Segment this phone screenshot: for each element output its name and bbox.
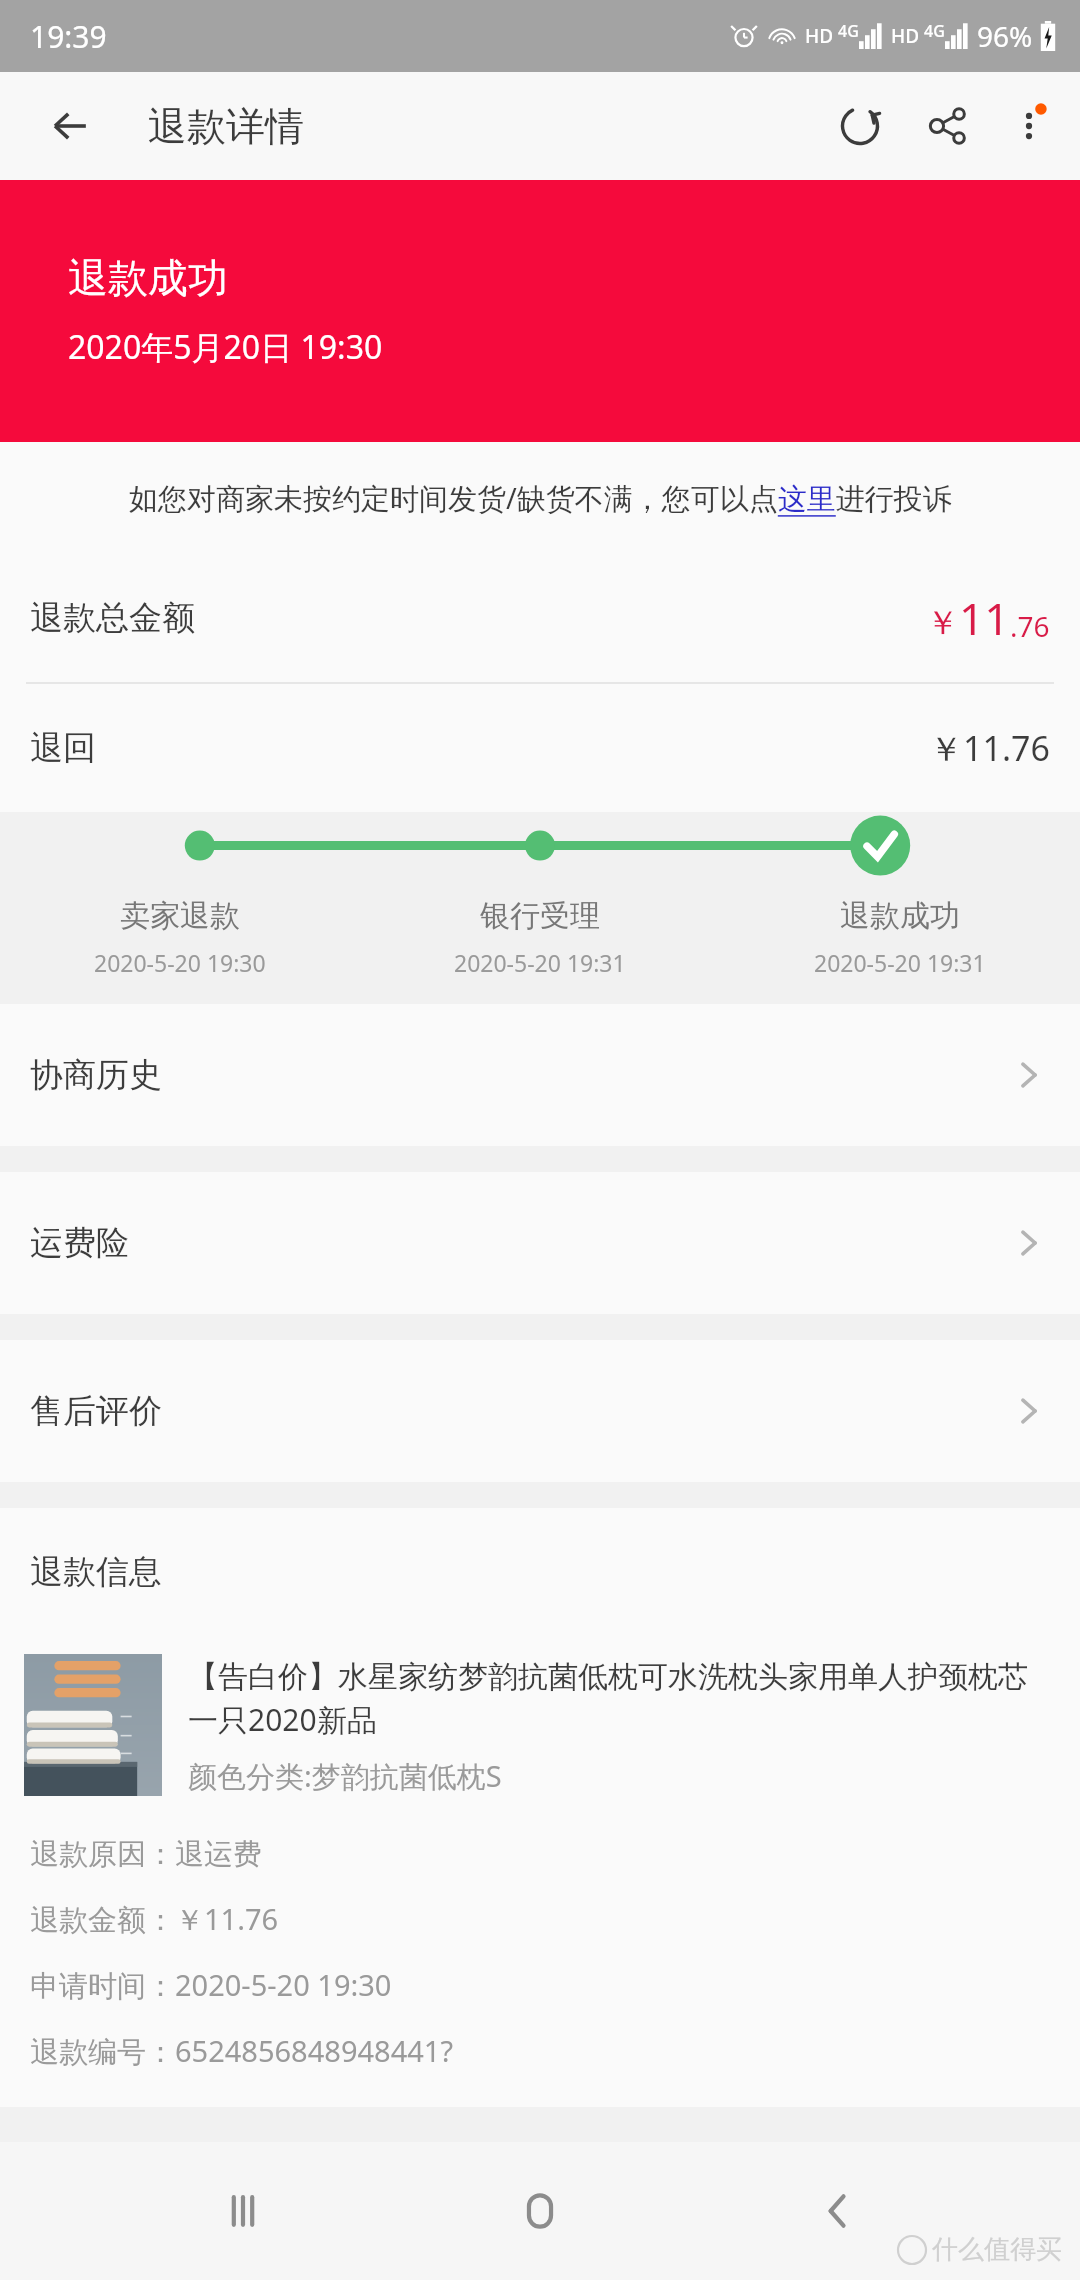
staticText: ￥ xyxy=(926,602,959,644)
staticText: 2020-5-20 19:30 xyxy=(94,947,266,978)
staticText: 19:39 xyxy=(30,16,107,57)
staticText: 退款编号：6524856848948441? xyxy=(30,2031,453,2071)
staticText: 96% xyxy=(977,17,1033,55)
staticText: 2020-5-20 19:31 xyxy=(814,947,986,978)
staticText: 运费险 xyxy=(30,1222,129,1264)
button[interactable]: 退款总金额 xyxy=(0,554,1080,682)
button[interactable]: More options xyxy=(992,82,1066,170)
button[interactable]: Refresh xyxy=(816,82,904,170)
staticText: 退款详情 xyxy=(148,102,304,151)
staticText: 4G xyxy=(924,20,945,42)
button[interactable]: 协商历史 xyxy=(0,1004,1080,1146)
staticText: 【告白价】水星家纺梦韵抗菌低枕可水洗枕头家用单人护颈枕芯一只2020新品 xyxy=(188,1658,1056,1740)
staticText: 4G xyxy=(838,20,859,42)
button[interactable]: Back xyxy=(28,84,112,168)
staticText: 申请时间：2020-5-20 19:30 xyxy=(30,1965,392,2005)
staticText: 颜色分类:梦韵抗菌低枕S xyxy=(188,1756,502,1796)
staticText: 退款总金额 xyxy=(30,597,195,639)
staticText: HD xyxy=(891,23,920,49)
staticText: 协商历史 xyxy=(30,1054,162,1096)
staticText: 退回 xyxy=(30,727,96,769)
button[interactable]: Recents xyxy=(188,2156,298,2266)
staticText: 如您对商家未按约定时间发货/缺货不满，您可以点这里进行投诉 xyxy=(129,478,952,518)
staticText: 2020-5-20 19:31 xyxy=(454,947,626,978)
button[interactable]: Back xyxy=(783,2156,893,2266)
button[interactable]: 退回 xyxy=(0,684,1080,812)
button[interactable]: Home xyxy=(485,2156,595,2266)
staticText: 退款金额：￥11.76 xyxy=(30,1899,279,1939)
button[interactable]: 运费险 xyxy=(0,1172,1080,1314)
staticText: 银行受理 xyxy=(480,897,600,935)
staticText: 退款信息 xyxy=(30,1551,162,1593)
staticText: 退款成功 xyxy=(840,897,960,935)
staticText: 退款成功 xyxy=(68,253,228,303)
staticText: HD xyxy=(805,23,834,49)
button[interactable]: Share xyxy=(904,82,992,170)
staticText: ￥11.76 xyxy=(929,725,1050,771)
staticText: 2020年5月20日 19:30 xyxy=(68,325,383,369)
staticText: 什么值得买 xyxy=(932,2233,1062,2266)
staticText: 11 xyxy=(959,588,1010,648)
staticText: 卖家退款 xyxy=(120,897,240,935)
button[interactable]: 售后评价 xyxy=(0,1340,1080,1482)
staticText: .76 xyxy=(1010,607,1050,645)
staticText: 售后评价 xyxy=(30,1390,162,1432)
button[interactable]: 【告白价】水星家纺梦韵抗菌低枕可水洗枕头家用单人护颈枕芯一只2020新品 xyxy=(0,1636,1080,1810)
button[interactable]: 如您对商家未按约定时间发货/缺货不满，您可以点这里进行投诉 xyxy=(0,442,1080,554)
staticText: 退款原因：退运费 xyxy=(30,1836,262,1873)
